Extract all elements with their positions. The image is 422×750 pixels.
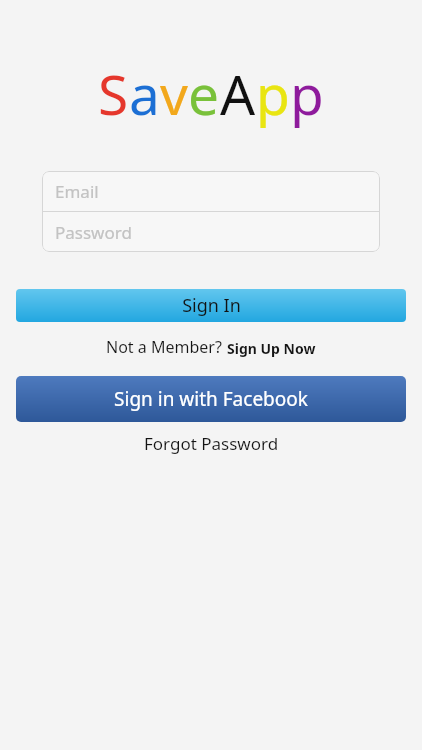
staticText: Not a Member? (106, 336, 222, 358)
staticText: A (220, 56, 256, 131)
button[interactable]: Sign Up Now (227, 339, 316, 358)
button[interactable]: Sign In (16, 289, 406, 322)
staticText: p (290, 56, 324, 131)
staticText: Sign In (182, 293, 241, 318)
staticText: Forgot Password (144, 432, 279, 455)
staticText: Sign Up Now (227, 339, 316, 358)
button[interactable]: Sign in with Facebook (16, 376, 406, 422)
staticText: v (160, 56, 188, 131)
staticText: p (256, 56, 290, 131)
staticText: Email (55, 180, 99, 203)
button[interactable]: Forgot Password (132, 429, 291, 458)
button[interactable]: Email (42, 171, 380, 211)
staticText: Password (55, 221, 132, 244)
staticText: e (188, 56, 220, 131)
button[interactable]: Password (42, 212, 380, 252)
staticText: Sign in with Facebook (114, 386, 308, 412)
staticText: a (129, 56, 160, 131)
staticText: S (98, 56, 129, 131)
